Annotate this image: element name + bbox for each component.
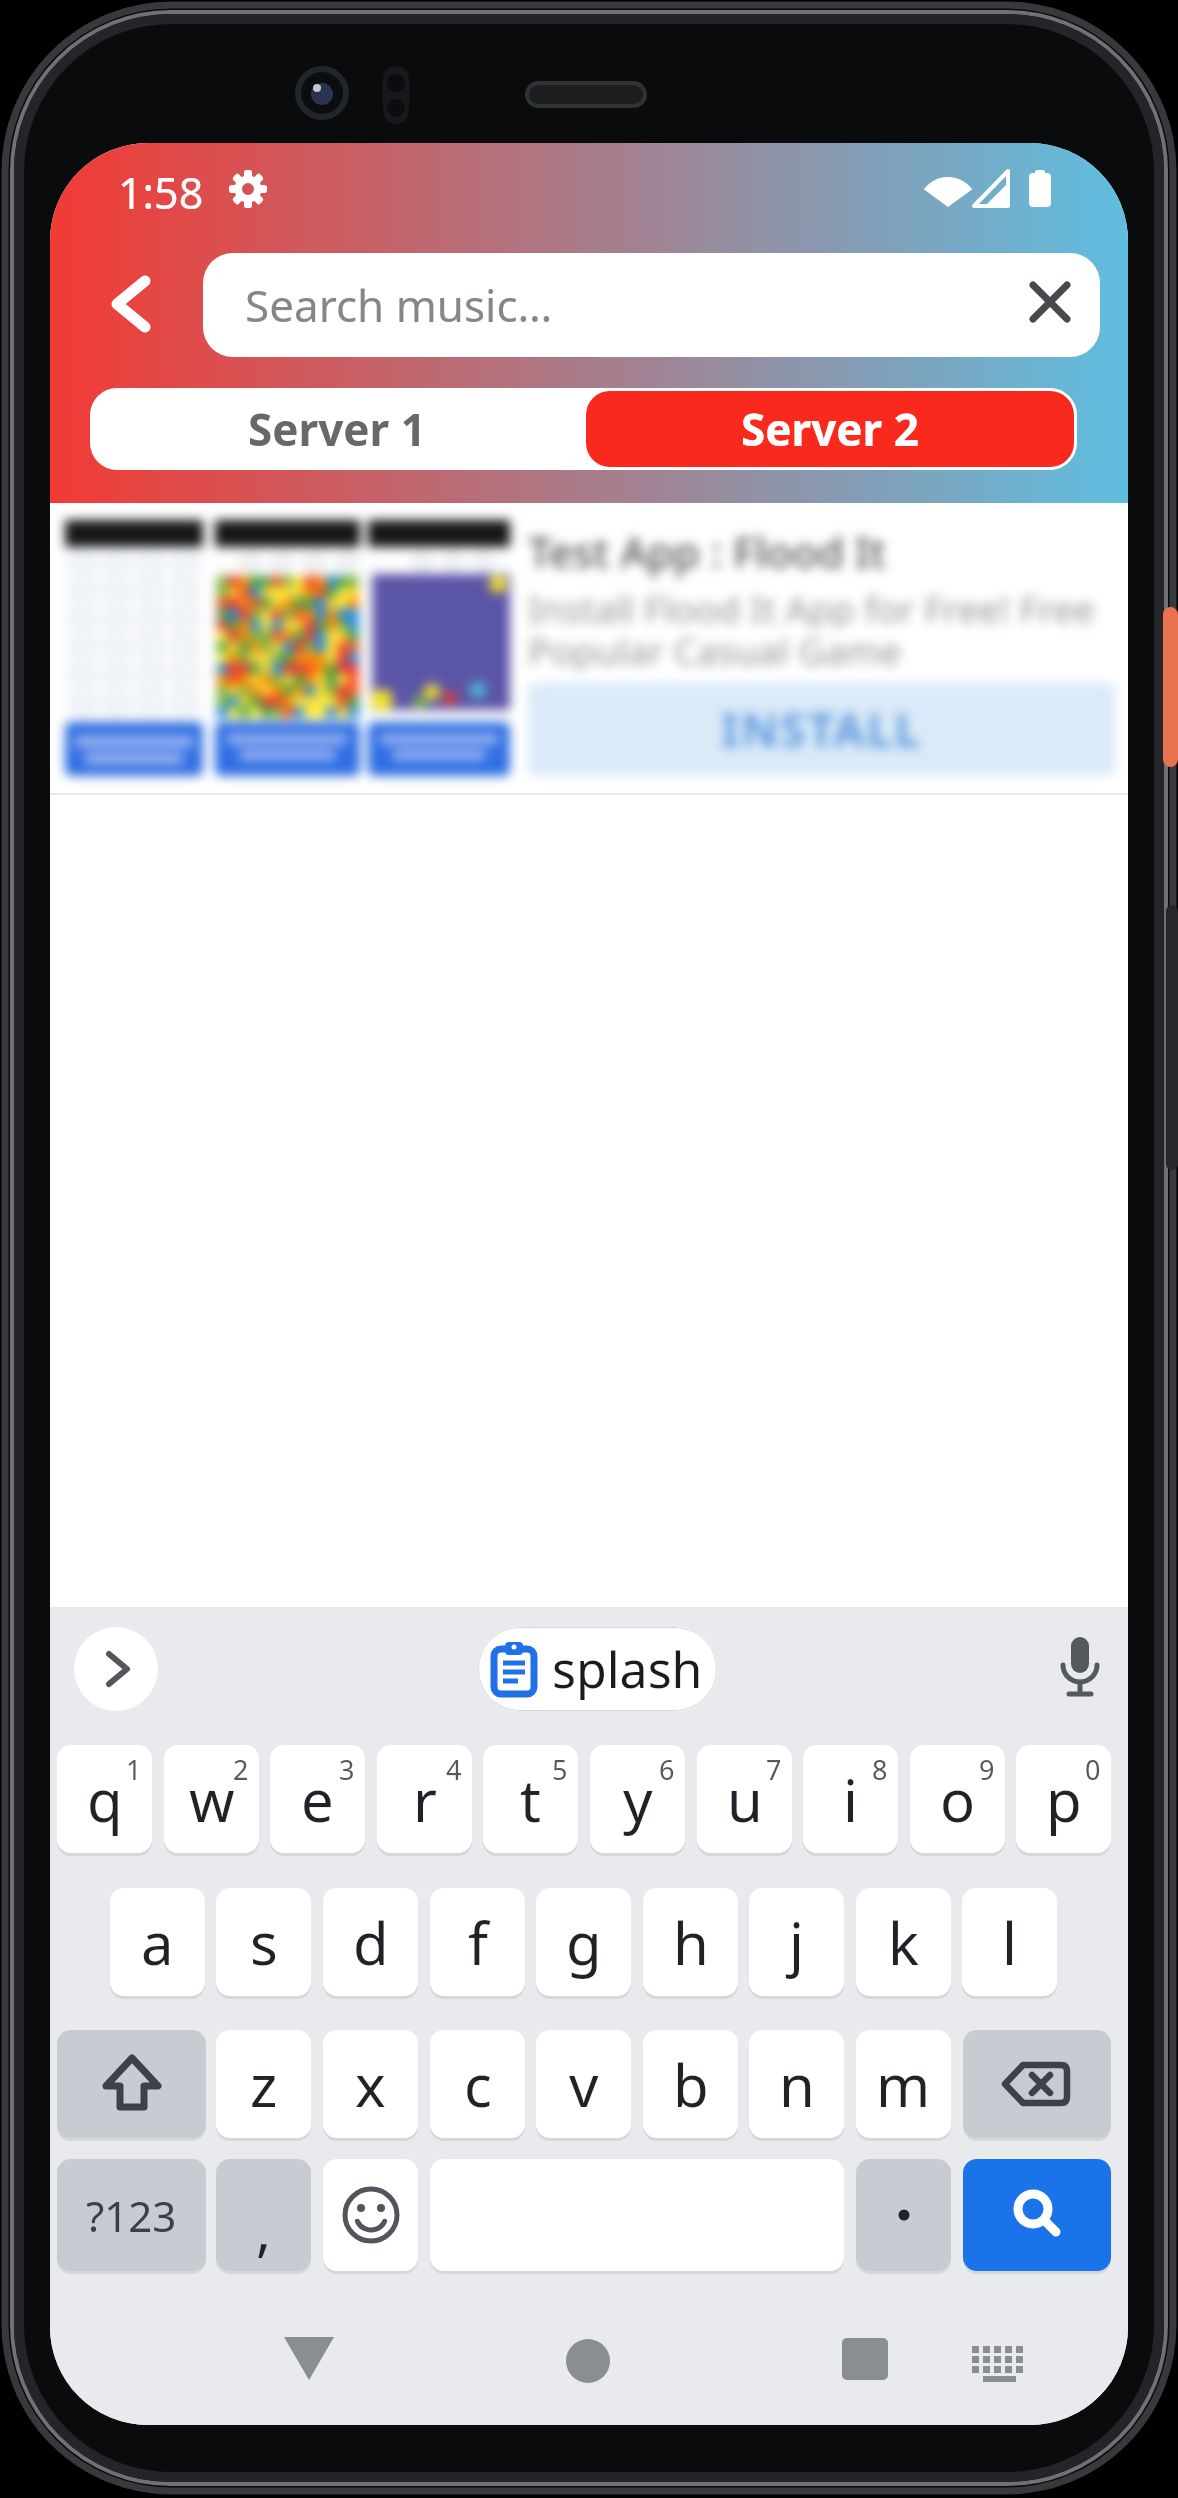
staticText: Install Flood It App for Free! Free — [528, 583, 1095, 629]
staticText: 6 — [659, 1751, 675, 1788]
staticText: r — [413, 1760, 437, 1839]
staticText: 5 — [552, 1751, 568, 1788]
staticText: f — [468, 1903, 488, 1982]
staticText: c — [464, 2045, 492, 2124]
staticText: v — [569, 2045, 599, 2124]
staticText: k — [888, 1903, 919, 1982]
staticText: Popular Casual Game — [528, 625, 902, 671]
staticText: Server 2 — [741, 399, 919, 459]
staticText: y — [623, 1760, 653, 1839]
staticText: m — [876, 2045, 931, 2124]
staticText: d — [353, 1903, 389, 1982]
staticText: w — [189, 1760, 235, 1839]
staticText: 2 — [233, 1751, 249, 1788]
staticText: Server 1 — [248, 399, 426, 459]
staticText: splash — [552, 1635, 703, 1703]
staticText: n — [779, 2045, 815, 2124]
staticText: 8 — [872, 1751, 888, 1788]
staticText: a — [141, 1903, 174, 1982]
staticText: INSTALL — [721, 698, 923, 761]
staticText: , — [256, 2191, 272, 2267]
staticText: 4 — [446, 1751, 462, 1788]
staticText: e — [301, 1760, 334, 1839]
staticText: u — [727, 1760, 763, 1839]
staticText: q — [87, 1760, 123, 1839]
staticText: Search music… — [245, 275, 553, 335]
staticText: i — [843, 1760, 858, 1839]
staticText: Test App : Flood It — [528, 523, 886, 580]
staticText: s — [250, 1903, 278, 1982]
staticText: ?123 — [86, 2187, 177, 2244]
staticText: 0 — [1085, 1751, 1101, 1788]
staticText: 1 — [126, 1751, 142, 1788]
staticText: g — [566, 1903, 602, 1982]
staticText: 1:58 — [118, 163, 204, 219]
staticText: p — [1046, 1760, 1082, 1839]
staticText: 9 — [979, 1751, 995, 1788]
staticText: 7 — [766, 1751, 782, 1788]
staticText: z — [250, 2045, 278, 2124]
staticText: j — [789, 1903, 804, 1982]
staticText: 3 — [339, 1751, 355, 1788]
staticText: b — [673, 2045, 709, 2124]
staticText: o — [940, 1760, 976, 1839]
staticText: h — [673, 1903, 709, 1982]
staticText: l — [1002, 1903, 1017, 1982]
staticText: t — [520, 1760, 541, 1839]
staticText: x — [355, 2045, 386, 2124]
